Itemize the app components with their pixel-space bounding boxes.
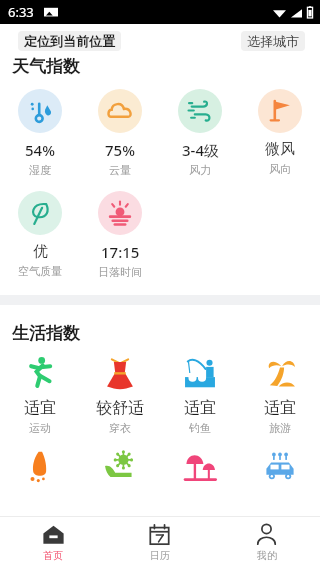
staticText: 风力 [189,163,211,177]
button[interactable]: 云量 [80,89,160,177]
button[interactable]: 日历 [106,516,213,568]
button[interactable]: 钓鱼 [160,356,240,435]
button[interactable]: 风力 [160,89,240,177]
staticText: 风向 [269,162,291,176]
button[interactable]: 运动 [0,356,80,435]
staticText: 运动 [29,421,51,435]
button[interactable]: 穿衣 [80,356,160,435]
button[interactable]: 空气质量 [0,191,80,278]
staticText: 6:33 [8,3,34,21]
button[interactable]: 我的 [213,516,320,568]
staticText: 钓鱼 [189,421,211,435]
button[interactable]: 紫外线 [160,449,240,483]
staticText: 17:15 [101,242,140,262]
staticText: 54% [25,140,55,160]
button[interactable]: 风向 [240,89,320,176]
button[interactable]: 旅游 [240,356,320,435]
staticText: 微风 [265,140,295,159]
staticText: 优 [33,242,48,261]
button[interactable]: 感冒 [80,449,160,483]
button[interactable]: 过敏 [0,449,80,483]
staticText: 穿衣 [109,421,131,435]
staticText: 生活指数 [12,323,80,344]
staticText: 定位到当前位置 [24,33,115,49]
button[interactable]: 日落时间 [80,191,160,279]
staticText: 日落时间 [98,265,142,279]
staticText: 天气指数 [12,56,80,77]
staticText: 75% [105,140,135,160]
staticText: 适宜 [24,398,56,418]
button[interactable]: 选择城市 [241,31,305,51]
staticText: 云量 [109,163,131,177]
button[interactable]: 定位到当前位置 [18,31,121,51]
button[interactable]: 洗车 [240,449,320,483]
staticText: 空气质量 [18,264,62,278]
staticText: 选择城市 [247,33,299,49]
staticText: 适宜 [264,398,296,418]
staticText: 我的 [257,549,277,562]
staticText: 3-4级 [182,140,219,160]
staticText: 适宜 [184,398,216,418]
staticText: 首页 [43,549,63,562]
button[interactable]: 湿度 [0,89,80,177]
staticText: 较舒适 [96,398,144,418]
staticText: 旅游 [269,421,291,435]
staticText: 日历 [150,549,170,562]
staticText: 湿度 [29,163,51,177]
button[interactable]: 首页 [0,516,106,568]
